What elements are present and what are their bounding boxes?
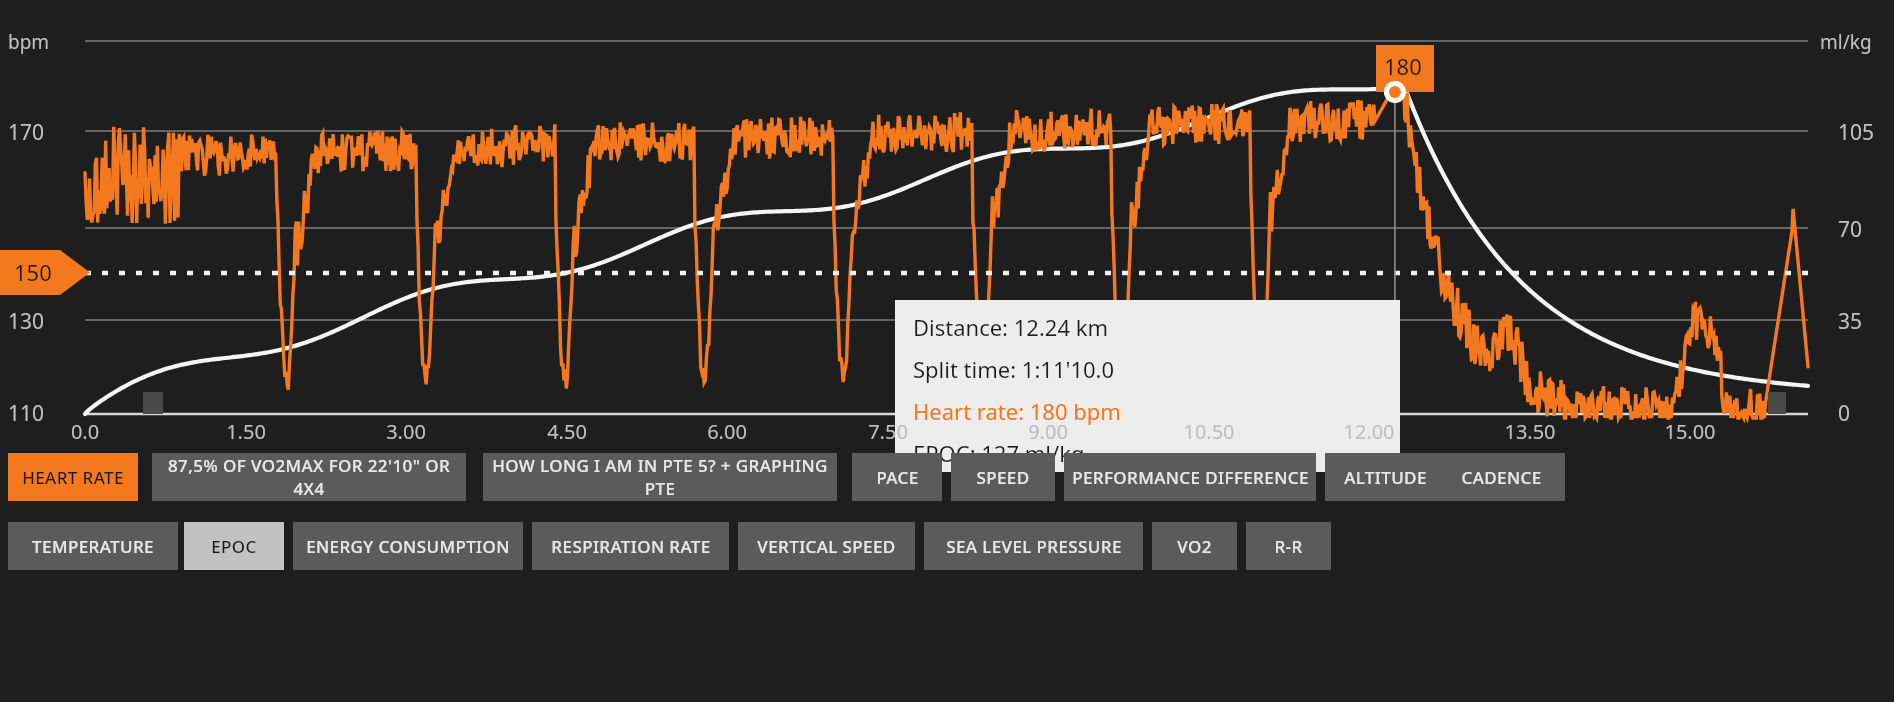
staticText: 4.50 — [527, 418, 607, 445]
button[interactable]: 87,5% OF VO2MAX FOR 22'10" OR 4X4 — [152, 453, 466, 501]
staticText: SEA LEVEL PRESSURE — [946, 535, 1122, 558]
staticText: 110 — [8, 399, 45, 428]
staticText: 9.00 — [1008, 418, 1088, 445]
staticText: 12.00 — [1329, 418, 1409, 445]
staticText: R-R — [1274, 535, 1303, 558]
button[interactable]: HOW LONG I AM IN PTE 5? + GRAPHING PTE — [483, 453, 837, 501]
staticText: Distance: 12.24 km — [913, 312, 1109, 342]
button[interactable]: ALTITUDE — [1325, 453, 1446, 501]
staticText: PERFORMANCE DIFFERENCE — [1072, 466, 1309, 489]
button[interactable]: VO2 — [1152, 522, 1237, 570]
staticText: 35 — [1838, 307, 1863, 336]
button[interactable]: HEART RATE — [8, 453, 138, 501]
staticText: HOW LONG I AM IN PTE 5? + GRAPHING PTE — [483, 454, 837, 500]
staticText: 1.50 — [206, 418, 286, 445]
staticText: 0.0 — [45, 418, 125, 445]
button[interactable]: EPOC — [184, 522, 284, 570]
staticText: 13.50 — [1490, 418, 1570, 445]
button[interactable]: ENERGY CONSUMPTION — [293, 522, 523, 570]
button[interactable]: VERTICAL SPEED — [738, 522, 915, 570]
staticText: 105 — [1838, 118, 1875, 147]
button[interactable]: TEMPERATURE — [8, 522, 178, 570]
button[interactable]: R-R — [1246, 522, 1331, 570]
button[interactable]: SPEED — [951, 453, 1055, 501]
staticText: 0 — [1838, 399, 1851, 428]
staticText: ml/kg — [1820, 29, 1872, 55]
button[interactable]: RESPIRATION RATE — [532, 522, 729, 570]
staticText: 180 — [1384, 51, 1422, 81]
staticText: SPEED — [976, 466, 1030, 489]
staticText: VO2 — [1177, 535, 1212, 558]
staticText: 15.00 — [1650, 418, 1730, 445]
staticText: CADENCE — [1461, 466, 1542, 489]
staticText: 130 — [8, 307, 45, 336]
button[interactable]: CADENCE — [1438, 453, 1565, 501]
staticText: 170 — [8, 118, 45, 147]
staticText: EPOC: 127 ml/kg — [913, 438, 1085, 468]
staticText: 150 — [14, 257, 52, 287]
button[interactable]: SEA LEVEL PRESSURE — [924, 522, 1143, 570]
button[interactable]: PACE — [852, 453, 942, 501]
staticText: 6.00 — [687, 418, 767, 445]
staticText: 3.00 — [366, 418, 446, 445]
staticText: ENERGY CONSUMPTION — [306, 535, 510, 558]
staticText: bpm — [8, 29, 50, 55]
staticText: EPOC — [211, 535, 257, 558]
staticText: 7.50 — [848, 418, 928, 445]
staticText: RESPIRATION RATE — [551, 535, 711, 558]
staticText: Split time: 1:11'10.0 — [913, 354, 1115, 384]
staticText: 10.50 — [1169, 418, 1249, 445]
staticText: PACE — [876, 466, 919, 489]
staticText: VERTICAL SPEED — [757, 535, 896, 558]
staticText: HEART RATE — [22, 466, 124, 489]
button[interactable]: PERFORMANCE DIFFERENCE — [1064, 453, 1316, 501]
staticText: 87,5% OF VO2MAX FOR 22'10" OR 4X4 — [152, 454, 466, 500]
staticText: Heart rate: 180 bpm — [913, 396, 1121, 426]
staticText: 70 — [1838, 215, 1863, 244]
staticText: ALTITUDE — [1344, 466, 1427, 489]
staticText: TEMPERATURE — [32, 535, 154, 558]
